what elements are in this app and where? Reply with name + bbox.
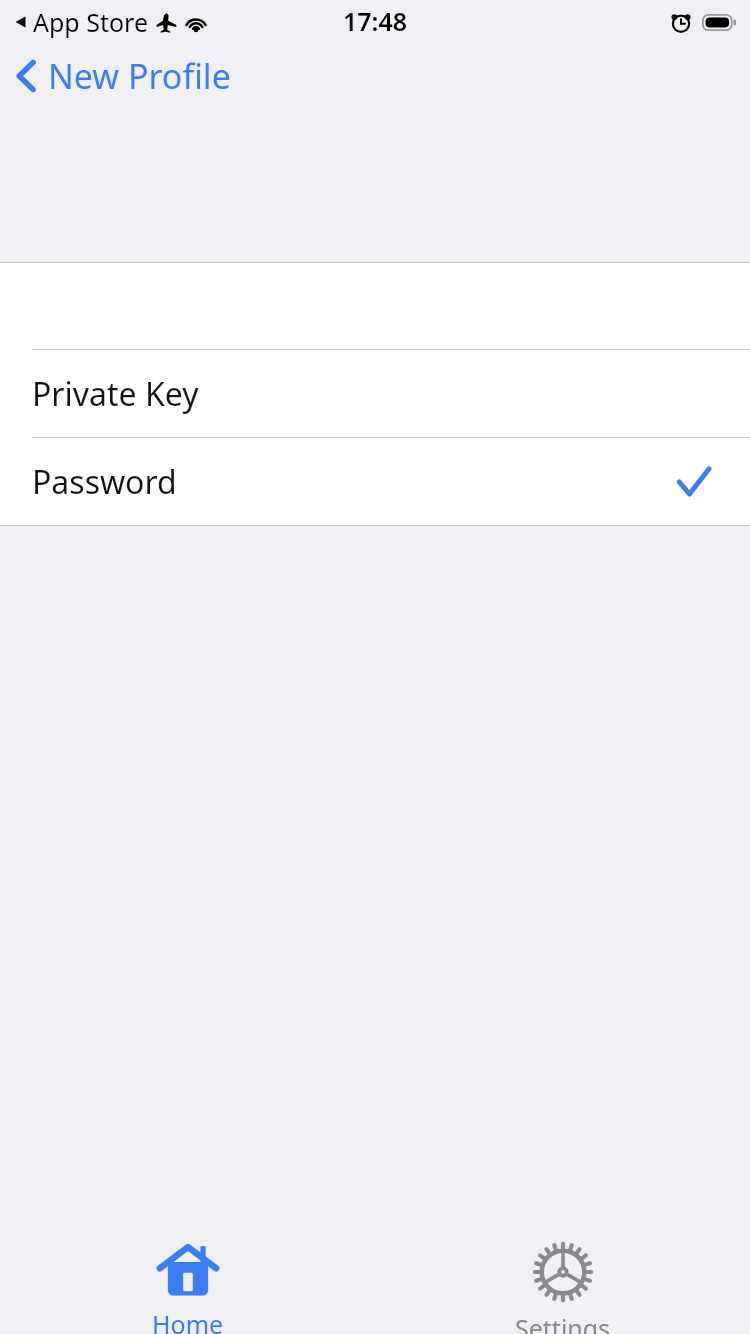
button[interactable]: Back	[0, 47, 245, 105]
staticText: 17:48	[343, 4, 408, 38]
staticText: Password	[32, 460, 177, 504]
button[interactable]: Home	[0, 1224, 375, 1334]
other: Home	[157, 1242, 219, 1298]
button[interactable]: Private Key	[0, 350, 750, 437]
staticText: New Profile	[48, 53, 231, 99]
staticText: Private Key	[32, 372, 199, 416]
staticText: Settings	[515, 1311, 611, 1334]
other: Settings	[533, 1242, 593, 1302]
other: Back	[16, 59, 36, 93]
button[interactable]: Settings	[375, 1224, 750, 1334]
staticText: App Store	[33, 5, 149, 39]
staticText: Home	[152, 1307, 224, 1334]
other: Selected	[678, 467, 710, 497]
button[interactable]: Password	[0, 438, 750, 525]
